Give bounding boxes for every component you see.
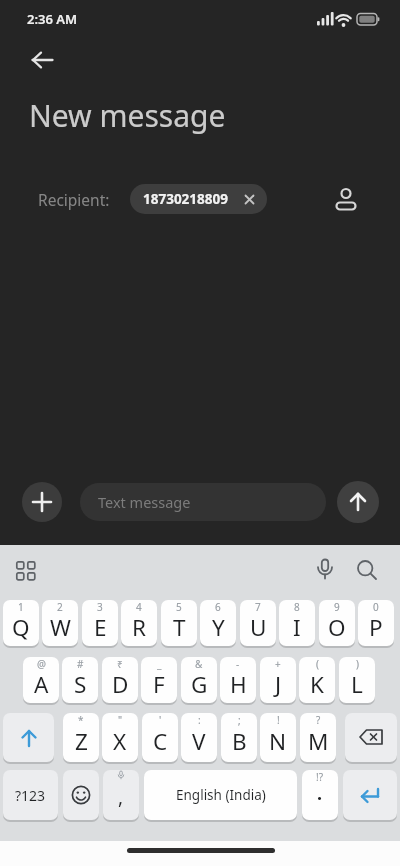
staticText: ₹ [117, 657, 123, 671]
button[interactable]: 4 [121, 600, 157, 646]
staticText: ; [238, 713, 241, 727]
staticText: @ [37, 657, 46, 671]
button[interactable]: # [62, 657, 98, 703]
staticText: 9 [334, 600, 340, 614]
staticText: F [153, 669, 165, 700]
button[interactable] [8, 553, 42, 587]
staticText: Z [75, 726, 88, 757]
button[interactable]: 2 [42, 600, 78, 646]
button[interactable]: 7 [240, 600, 276, 646]
staticText: 0 [373, 600, 379, 614]
staticText: + [275, 657, 281, 671]
button[interactable] [345, 713, 397, 762]
button[interactable]: ) [339, 657, 375, 703]
staticText: W [50, 612, 71, 643]
button[interactable]: ₹ [102, 657, 138, 703]
staticText: I [293, 612, 301, 643]
button[interactable]: _ [141, 657, 177, 703]
button[interactable]: * [63, 713, 99, 762]
staticText: P [369, 612, 383, 643]
staticText: _ [157, 657, 162, 671]
staticText: ! [277, 713, 280, 727]
button[interactable] [22, 40, 62, 80]
staticText: Y [212, 612, 225, 643]
button[interactable]: ? [300, 713, 336, 762]
staticText: 7 [255, 600, 261, 614]
button[interactable]: 8 [279, 600, 315, 646]
staticText: . [317, 781, 323, 806]
staticText: ?123 [15, 786, 46, 805]
staticText: 1 [18, 600, 24, 614]
staticText: 2 [57, 600, 63, 614]
button[interactable] [337, 481, 379, 523]
button[interactable]: !? [302, 770, 338, 820]
staticText: L [351, 669, 363, 700]
staticText: & [195, 657, 203, 671]
button[interactable]: English (India) [144, 770, 297, 820]
staticText: A [34, 669, 49, 700]
button[interactable] [63, 770, 99, 820]
staticText: T [173, 612, 186, 643]
staticText: 6 [215, 600, 221, 614]
button[interactable] [350, 553, 384, 587]
staticText: !? [316, 770, 324, 784]
staticText: B [232, 726, 247, 757]
staticText: - [236, 657, 240, 671]
button[interactable]: 9 [319, 600, 355, 646]
staticText: U [250, 612, 267, 643]
button[interactable]: + [260, 657, 296, 703]
staticText: Q [12, 612, 30, 643]
button[interactable]: 3 [82, 600, 118, 646]
button[interactable]: ?123 [3, 770, 58, 820]
staticText: X [113, 726, 127, 757]
button[interactable]: 5 [161, 600, 197, 646]
staticText: Text message [98, 492, 191, 512]
staticText: 4 [136, 600, 142, 614]
button[interactable] [343, 770, 397, 820]
button[interactable]: ; [221, 713, 257, 762]
staticText: H [230, 669, 247, 700]
button[interactable]: Text message [80, 483, 326, 521]
staticText: O [328, 612, 346, 643]
button[interactable]: ' [142, 713, 178, 762]
button[interactable]: ( [299, 657, 335, 703]
staticText: R [132, 612, 146, 643]
staticText: E [94, 612, 107, 643]
staticText: C [153, 726, 168, 757]
staticText: ' [159, 713, 162, 727]
button[interactable]: 18730218809 [130, 184, 267, 214]
staticText: ( [316, 657, 319, 671]
staticText: V [192, 726, 206, 757]
staticText: , [118, 784, 124, 810]
button[interactable]: 0 [358, 600, 394, 646]
staticText: S [74, 669, 87, 700]
staticText: 5 [176, 600, 182, 614]
staticText: " [118, 713, 123, 727]
staticText: English (India) [176, 786, 266, 804]
staticText: Recipient: [38, 189, 110, 210]
button[interactable]: , [103, 770, 139, 820]
button[interactable]: " [102, 713, 138, 762]
button[interactable]: 1 [3, 600, 39, 646]
staticText: 8 [294, 600, 300, 614]
button[interactable] [328, 182, 364, 218]
button[interactable] [3, 713, 54, 762]
button[interactable]: - [220, 657, 256, 703]
staticText: ? [316, 713, 321, 727]
staticText: 18730218809 [143, 190, 228, 208]
staticText: G [191, 669, 208, 700]
button[interactable]: : [181, 713, 217, 762]
staticText: * [78, 713, 84, 727]
staticText: 2:36 AM [27, 10, 78, 28]
button[interactable]: @ [23, 657, 59, 703]
button[interactable] [22, 482, 62, 522]
button[interactable] [308, 553, 341, 586]
staticText: : [198, 713, 201, 727]
button[interactable]: ! [260, 713, 296, 762]
staticText: ) [356, 657, 359, 671]
staticText: # [77, 657, 84, 671]
button[interactable]: 6 [200, 600, 236, 646]
staticText: D [112, 669, 129, 700]
button[interactable]: & [181, 657, 217, 703]
staticText: M [308, 726, 329, 757]
